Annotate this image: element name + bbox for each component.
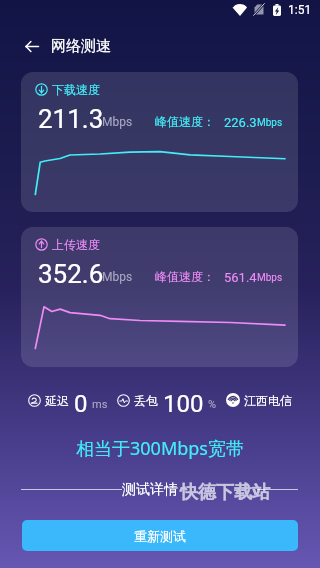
button[interactable]: 上传速度 <box>21 227 298 367</box>
staticText: 0 <box>74 390 88 412</box>
staticText: 下载速度 <box>52 82 100 97</box>
staticText: % <box>208 398 217 411</box>
staticText: 测试详情 <box>122 481 178 499</box>
staticText: 江西电信 <box>244 393 292 408</box>
staticText: Mbps <box>257 272 283 284</box>
staticText: 延迟 <box>45 393 69 408</box>
staticText: 1:51 <box>288 3 312 17</box>
staticText: 相当于300Mbps宽带 <box>0 436 320 461</box>
staticText: 226.3 <box>224 115 257 130</box>
button[interactable]: 测试详情 <box>122 481 178 499</box>
staticText: 峰值速度： <box>155 114 215 129</box>
staticText: 快德下载站 <box>180 481 270 504</box>
staticText: 100 <box>163 390 204 412</box>
staticText: 丢包 <box>134 393 158 408</box>
staticText: Mbps <box>102 270 133 284</box>
button[interactable]: 下载速度 <box>21 72 298 212</box>
staticText: 561.4 <box>224 270 257 285</box>
staticText: 上传速度 <box>52 237 100 252</box>
staticText: Mbps <box>102 115 133 129</box>
staticText: 211.3 <box>38 104 104 134</box>
button[interactable]: 重新测试 <box>22 520 298 551</box>
staticText: 峰值速度： <box>155 269 215 284</box>
button[interactable]: Back <box>10 24 54 68</box>
staticText: 352.6 <box>38 259 104 289</box>
staticText: ms <box>92 398 108 411</box>
staticText: Mbps <box>257 117 283 129</box>
staticText: 网络测速 <box>51 37 111 56</box>
staticText: 重新测试 <box>134 528 186 544</box>
